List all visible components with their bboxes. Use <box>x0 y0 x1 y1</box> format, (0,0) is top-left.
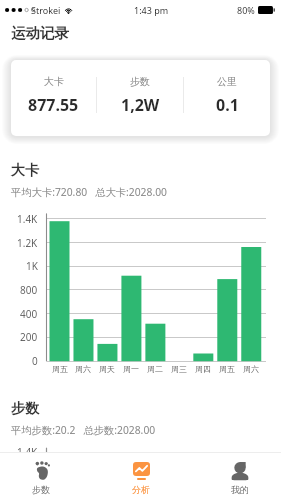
staticText: 步数 <box>130 75 150 88</box>
staticText: 周四 <box>195 364 211 374</box>
staticText: 周二 <box>147 364 163 374</box>
staticText: 步数 <box>32 484 50 495</box>
staticText: 我的 <box>231 484 249 495</box>
staticText: 0.1 <box>216 94 239 116</box>
staticText: 周一 <box>123 364 139 374</box>
button[interactable]: 分析 <box>116 453 166 500</box>
staticText: 1.4K <box>17 212 38 226</box>
button[interactable]: 步数 <box>16 453 66 500</box>
staticText: 大卡 <box>11 162 39 180</box>
staticText: 分析 <box>132 484 150 495</box>
staticText: 运动记录 <box>11 24 69 42</box>
staticText: 周五 <box>219 364 235 374</box>
staticText: 1:43 pm <box>134 4 169 16</box>
staticText: 周六 <box>243 364 259 374</box>
staticText: 400 <box>20 307 38 321</box>
staticText: Strokei <box>31 4 61 16</box>
staticText: 200 <box>20 330 38 344</box>
staticText: 周六 <box>75 364 91 374</box>
staticText: 80% <box>237 4 255 16</box>
staticText: 平均大卡:720.80 总大卡:2028.00 <box>11 185 167 199</box>
staticText: 公里 <box>217 75 237 88</box>
staticText: 1,2W <box>121 94 160 116</box>
staticText: 周五 <box>52 364 68 374</box>
staticText: 800 <box>20 283 38 297</box>
staticText: 0 <box>32 354 38 368</box>
staticText: 1.2K <box>17 236 38 250</box>
staticText: 大卡 <box>44 75 64 88</box>
staticText: 周天 <box>99 364 115 374</box>
staticText: 平均步数:20.2 总步数:2028.00 <box>11 423 156 437</box>
staticText: 1K <box>26 259 38 273</box>
button[interactable]: 我的 <box>215 453 265 500</box>
staticText: 步数 <box>11 400 39 418</box>
staticText: 周三 <box>171 364 187 374</box>
button[interactable]: 大卡 <box>11 60 96 136</box>
staticText: 877.55 <box>28 94 79 116</box>
button[interactable]: 步数 <box>97 60 183 136</box>
staticText: 1.4K <box>17 445 38 452</box>
button[interactable]: 公里 <box>184 60 270 136</box>
